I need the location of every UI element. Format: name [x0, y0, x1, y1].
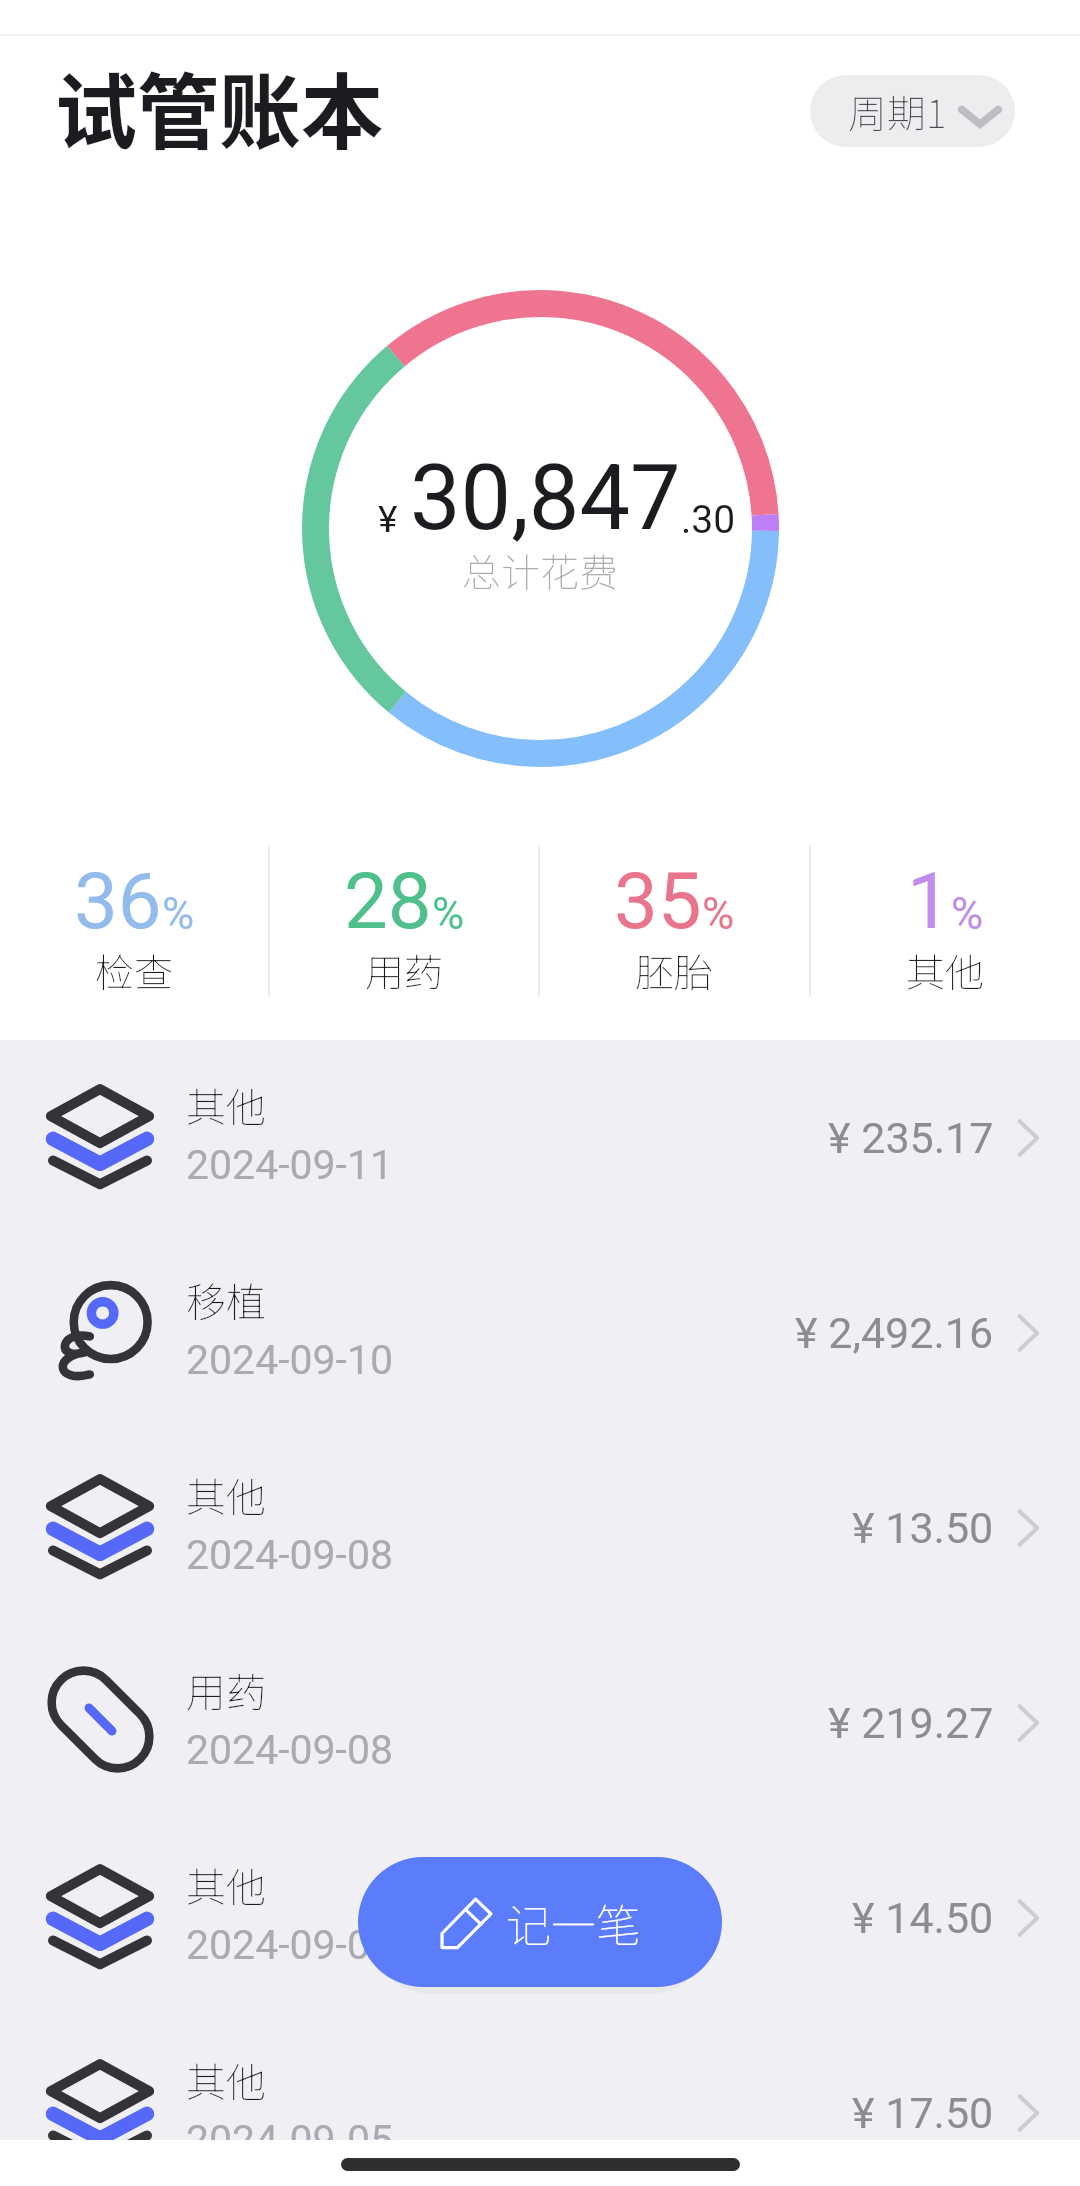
staticText: 其他: [186, 1466, 266, 1524]
button[interactable]: 28: [270, 841, 538, 1001]
staticText: 周期1: [848, 83, 947, 139]
staticText: 2024-09-05: [186, 2116, 394, 2164]
staticText: %: [951, 888, 984, 940]
staticText: %: [432, 888, 465, 940]
staticText: 其他: [186, 2051, 266, 2109]
staticText: 总计花费: [0, 542, 1080, 598]
staticText: 30,847: [410, 446, 681, 551]
staticText: 28: [344, 856, 432, 947]
staticText: ¥ 2,492.16: [795, 1308, 994, 1358]
button[interactable]: 移植: [0, 1235, 1080, 1430]
button[interactable]: 其他: [0, 2015, 1080, 2186]
staticText: 其他: [186, 1076, 266, 1134]
staticText: 2024-09-08: [186, 1531, 394, 1579]
staticText: ¥ 13.50: [852, 1503, 994, 1553]
staticText: 2024-09-10: [186, 1336, 394, 1384]
staticText: 移植: [186, 1271, 266, 1329]
staticText: 2024-09-11: [186, 1141, 394, 1189]
staticText: 记一笔: [506, 1890, 642, 1955]
button[interactable]: Add a record: [358, 1857, 722, 1987]
button[interactable]: 用药: [0, 1625, 1080, 1820]
button[interactable]: 其他: [0, 1040, 1080, 1235]
staticText: .30: [681, 497, 736, 543]
staticText: 其他: [186, 1856, 266, 1914]
staticText: 1: [907, 856, 951, 947]
staticText: ¥ 14.50: [852, 1893, 994, 1943]
button[interactable]: 其他: [0, 1820, 1080, 2015]
staticText: %: [162, 888, 195, 940]
staticText: ¥ 17.50: [852, 2088, 994, 2138]
button[interactable]: 1: [811, 841, 1080, 1001]
button[interactable]: 35: [540, 841, 809, 1001]
staticText: 用药: [186, 1661, 266, 1719]
staticText: 其他: [906, 942, 985, 998]
staticText: 35: [614, 856, 702, 947]
staticText: ¥: [378, 498, 398, 541]
staticText: 用药: [365, 942, 444, 998]
staticText: 胚胎: [635, 942, 714, 998]
staticText: 检查: [95, 942, 174, 998]
button[interactable]: 其他: [0, 1430, 1080, 1625]
staticText: ¥ 219.27: [828, 1698, 994, 1748]
button[interactable]: Select cycle: [810, 75, 1015, 147]
staticText: ¥ 235.17: [828, 1113, 994, 1163]
button[interactable]: 36: [0, 841, 268, 1001]
staticText: 2024-09-08: [186, 1726, 394, 1774]
staticText: 36: [74, 856, 162, 947]
staticText: 试管账本: [55, 47, 384, 166]
staticText: 2024-09-05: [186, 1921, 394, 1969]
staticText: %: [702, 888, 735, 940]
